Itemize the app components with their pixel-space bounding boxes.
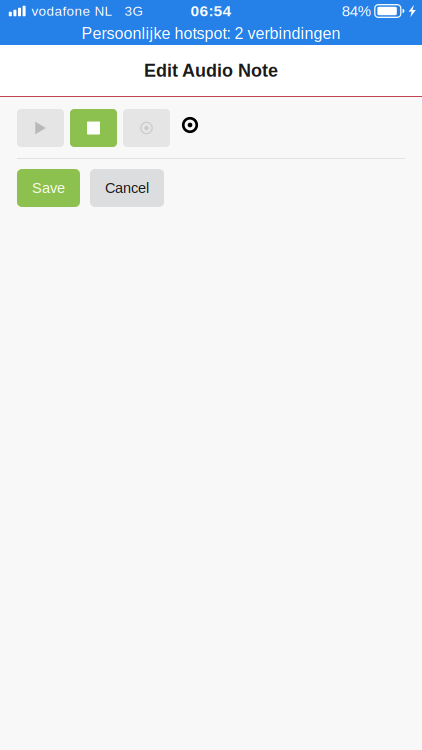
button[interactable]: Recording indicator xyxy=(176,109,204,147)
staticText: Cancel xyxy=(105,180,149,196)
button[interactable]: Play xyxy=(17,109,64,147)
button[interactable]: Cancel xyxy=(90,169,164,207)
button[interactable]: Stop xyxy=(70,109,117,147)
button[interactable]: Save xyxy=(17,169,80,207)
staticText: 84% xyxy=(342,3,371,19)
staticText: Edit Audio Note xyxy=(144,60,278,80)
staticText: Persoonlijke hotspot: 2 verbindingen xyxy=(81,25,340,42)
staticText: 06:54 xyxy=(190,2,231,20)
staticText: vodafone NL xyxy=(31,3,112,19)
staticText: 3G xyxy=(124,3,143,19)
button[interactable]: Record xyxy=(123,109,170,147)
staticText: Save xyxy=(32,180,65,196)
